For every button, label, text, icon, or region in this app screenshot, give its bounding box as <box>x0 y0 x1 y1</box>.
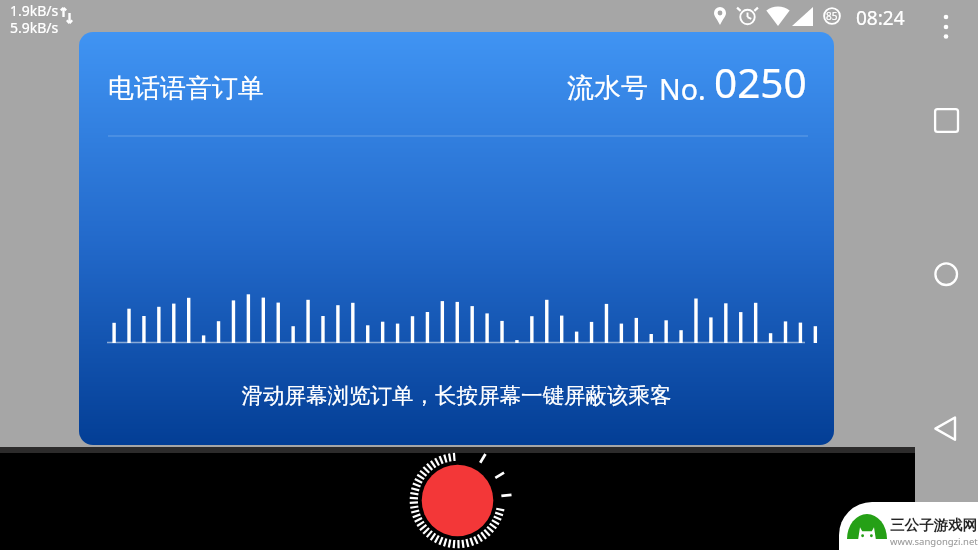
staticText: 流水号 <box>567 71 648 105</box>
staticText: 滑动屏幕浏览订单，长按屏幕一键屏蔽该乘客 <box>79 382 834 409</box>
button[interactable]: 电话语音订单 <box>79 32 834 445</box>
staticText: www.sangongzi.net <box>890 535 978 548</box>
staticText: 08:24 <box>856 5 905 31</box>
staticText: No. <box>659 70 706 109</box>
staticText: 5.9kB/s <box>10 18 59 37</box>
button[interactable]: More options <box>922 2 970 52</box>
button[interactable]: Back <box>922 405 970 453</box>
staticText: 1.9kB/s <box>10 1 59 20</box>
button[interactable]: Home <box>922 250 970 298</box>
staticText: 85 <box>826 9 838 23</box>
staticText: 电话语音订单 <box>108 72 264 105</box>
button[interactable]: Recents <box>922 96 970 144</box>
button[interactable]: Record <box>400 443 515 550</box>
staticText: 0250 <box>714 55 807 110</box>
staticText: 三公子游戏网 <box>890 516 977 534</box>
